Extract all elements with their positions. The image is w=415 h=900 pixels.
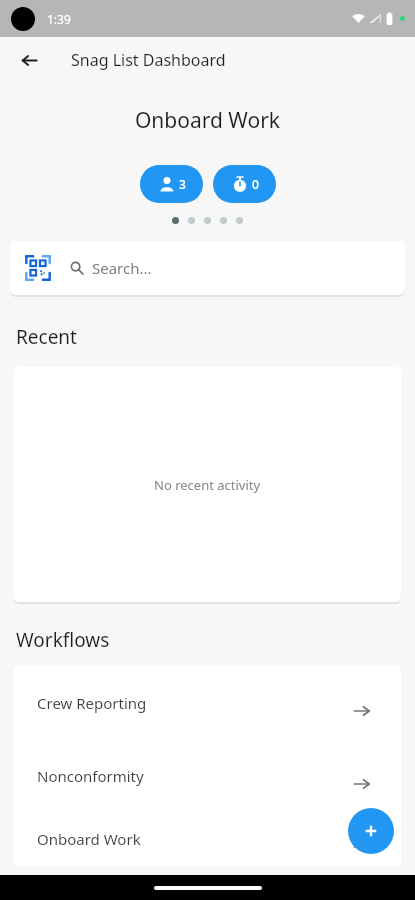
button[interactable]: Add bbox=[348, 808, 394, 854]
staticText: Onboard Work bbox=[37, 829, 141, 849]
staticText: Onboard Work bbox=[0, 106, 415, 135]
button[interactable]: Timer count bbox=[213, 165, 276, 203]
button[interactable]: Crew Reporting bbox=[14, 666, 401, 739]
button[interactable]: Crew count bbox=[140, 165, 203, 203]
button[interactable]: Onboard Work bbox=[14, 812, 401, 866]
button[interactable]: Scan QR code bbox=[10, 241, 405, 295]
staticText: 0 bbox=[252, 176, 259, 192]
staticText: Snag List Dashboard bbox=[71, 49, 226, 71]
staticText: Search... bbox=[92, 258, 152, 278]
button[interactable]: Back bbox=[14, 45, 44, 75]
staticText: Workflows bbox=[16, 627, 110, 653]
staticText: 1:39 bbox=[47, 11, 71, 27]
staticText: Nonconformity bbox=[37, 766, 144, 786]
button[interactable]: Nonconformity bbox=[14, 739, 401, 812]
staticText: No recent activity bbox=[154, 476, 261, 494]
staticText: Crew Reporting bbox=[37, 693, 147, 713]
button[interactable]: Scan QR code bbox=[24, 254, 52, 282]
staticText: Recent bbox=[16, 324, 77, 350]
staticText: 3 bbox=[179, 176, 186, 192]
